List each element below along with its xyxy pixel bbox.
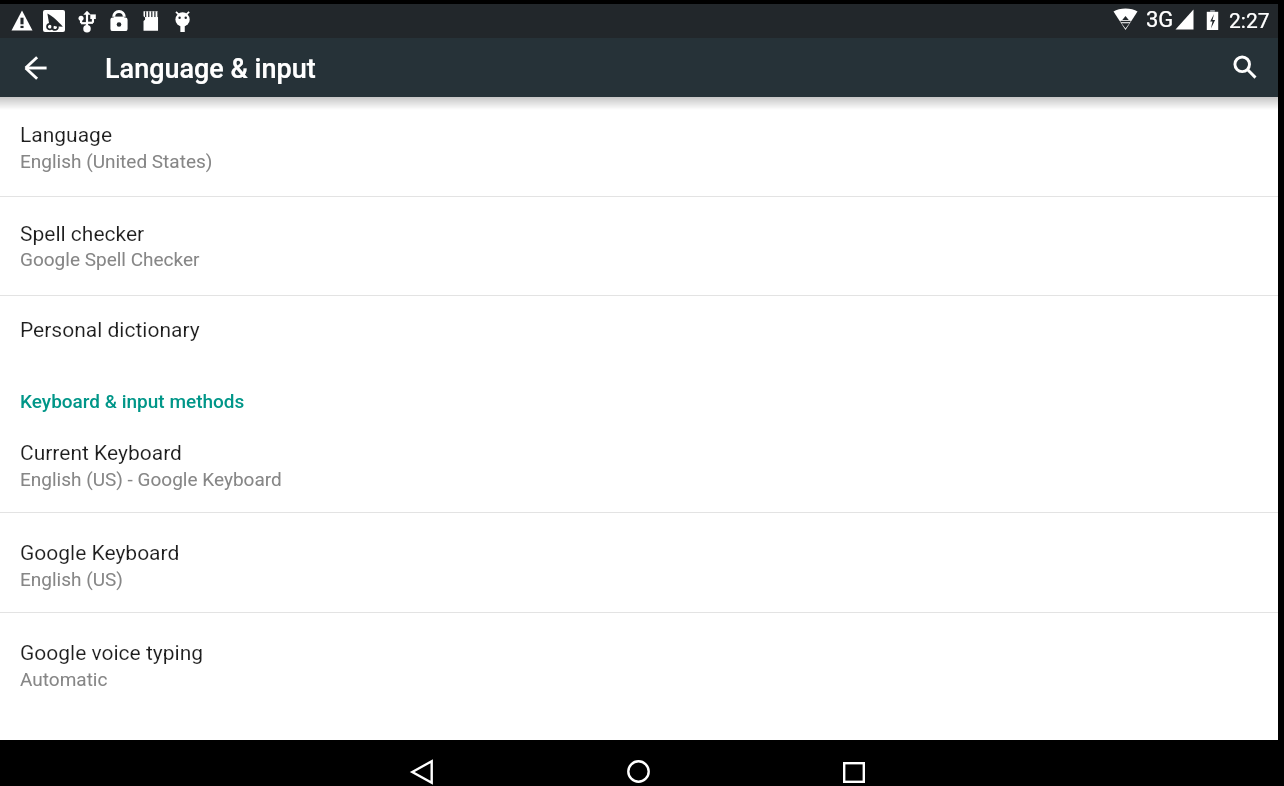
staticText: Google voice typing [20, 641, 204, 666]
button[interactable]: Google voice typing [0, 612, 1278, 740]
staticText: Language & input [105, 53, 316, 85]
button[interactable]: Spell checker [0, 196, 1278, 295]
button[interactable]: Personal dictionary [0, 295, 1278, 367]
staticText: Spell checker [20, 222, 145, 247]
staticText: English (United States) [20, 150, 213, 172]
staticText: 2:27 [1229, 9, 1270, 34]
button[interactable]: Language [0, 97, 1278, 196]
button[interactable]: Google Keyboard [0, 512, 1278, 612]
staticText: English (US) - Google Keyboard [20, 468, 282, 490]
staticText: Keyboard & input methods [20, 390, 245, 412]
button[interactable]: Current Keyboard [0, 412, 1278, 512]
staticText: Google Spell Checker [20, 248, 200, 270]
staticText: 3G [1146, 7, 1174, 33]
button[interactable]: Recent apps [822, 749, 886, 786]
button[interactable]: Home [606, 748, 670, 786]
button[interactable]: Back [390, 749, 454, 786]
button[interactable]: Search [1221, 43, 1269, 91]
staticText: Automatic [20, 668, 108, 690]
staticText: Current Keyboard [20, 441, 182, 466]
button[interactable]: Navigate up [12, 44, 60, 92]
staticText: Language [20, 123, 113, 148]
staticText: English (US) [20, 568, 123, 590]
staticText: Google Keyboard [20, 541, 180, 566]
staticText: Personal dictionary [20, 318, 200, 343]
